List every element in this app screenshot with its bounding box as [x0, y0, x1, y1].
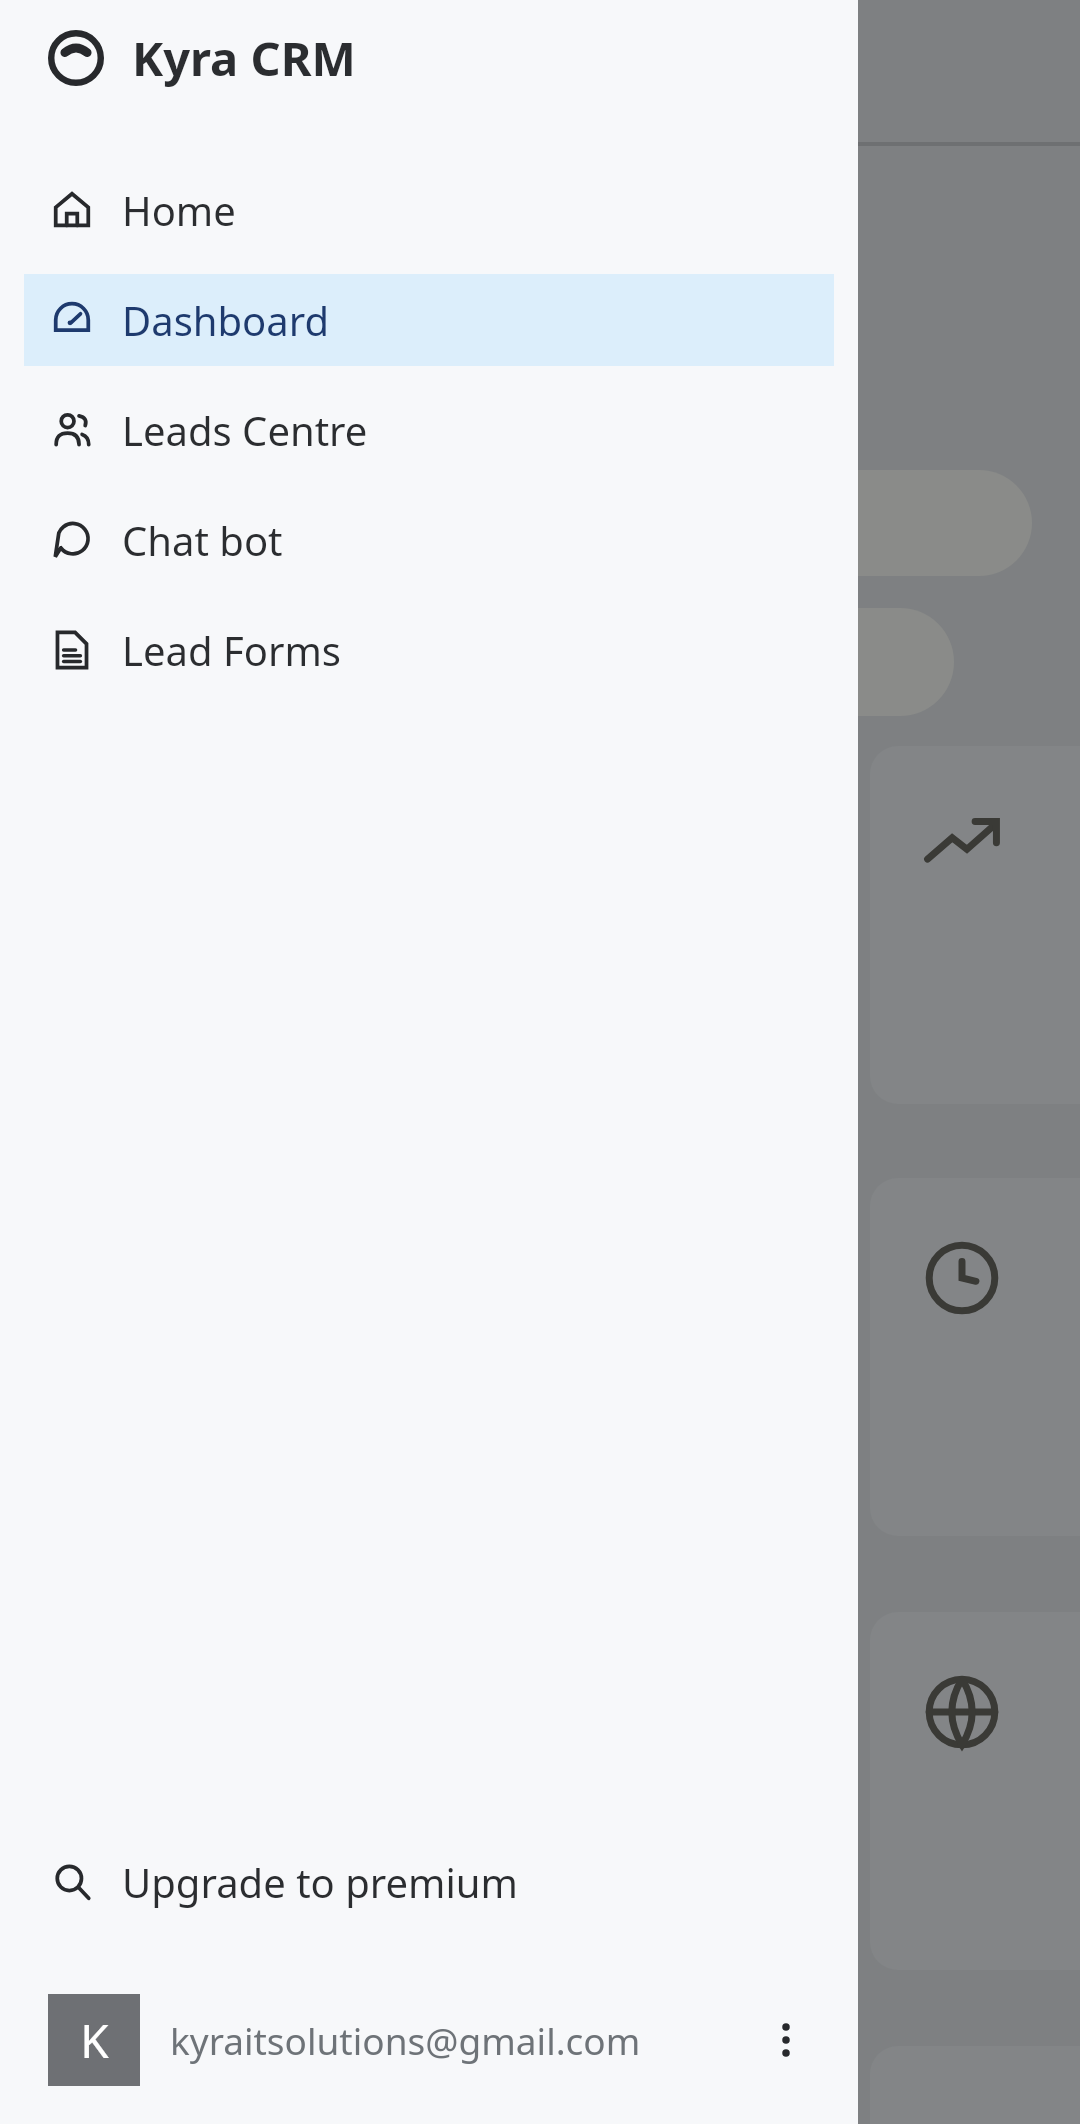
staticText: Lead Forms [122, 623, 341, 677]
button[interactable]: Leads Centre [24, 384, 834, 476]
staticText: Upgrade to premium [122, 1855, 518, 1909]
staticText: kyraitsolutions@gmail.com [170, 2015, 641, 2065]
staticText: Home [122, 183, 236, 237]
button[interactable]: Home [24, 164, 834, 256]
staticText: Leads Centre [122, 403, 368, 457]
button[interactable]: Lead Forms [24, 604, 834, 696]
button[interactable]: K [0, 1976, 858, 2104]
staticText: Kyra CRM [132, 26, 356, 90]
staticText: Chat bot [122, 513, 283, 567]
staticText: Dashboard [122, 293, 330, 347]
button[interactable]: Chat bot [24, 494, 834, 586]
button[interactable]: Kyra CRM [0, 0, 858, 116]
button[interactable]: Upgrade to premium [0, 1830, 858, 1934]
button[interactable]: Dashboard [24, 274, 834, 366]
button[interactable]: Account options [750, 2004, 822, 2076]
staticText: K [80, 2009, 109, 2072]
